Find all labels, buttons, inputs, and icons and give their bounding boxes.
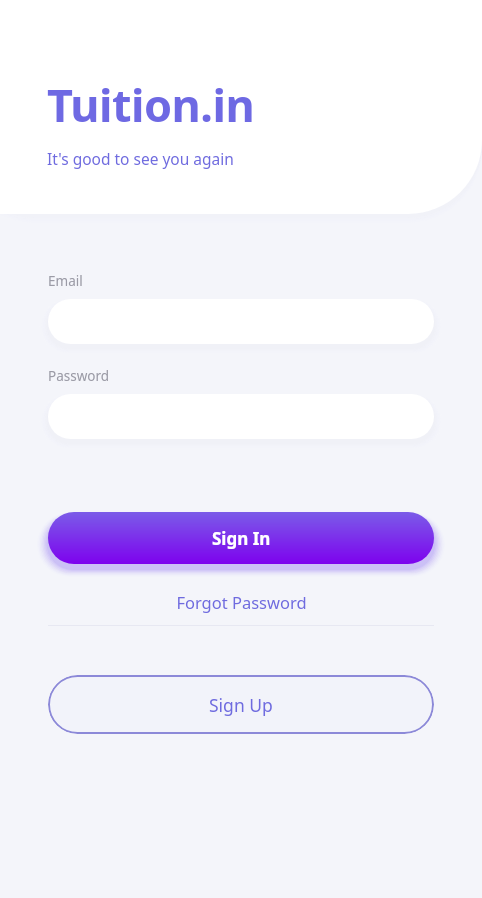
button[interactable]: Sign Up: [48, 675, 434, 734]
staticText: Forgot Password: [176, 591, 307, 613]
staticText: Email: [48, 272, 83, 290]
staticText: It's good to see you again: [47, 148, 234, 169]
staticText: Sign In: [212, 527, 271, 550]
staticText: Tuition.in: [47, 74, 255, 135]
staticText: Password: [48, 367, 110, 385]
button[interactable]: Forgot Password: [48, 587, 434, 617]
staticText: Sign Up: [209, 693, 273, 717]
button[interactable]: Sign In: [48, 512, 434, 564]
